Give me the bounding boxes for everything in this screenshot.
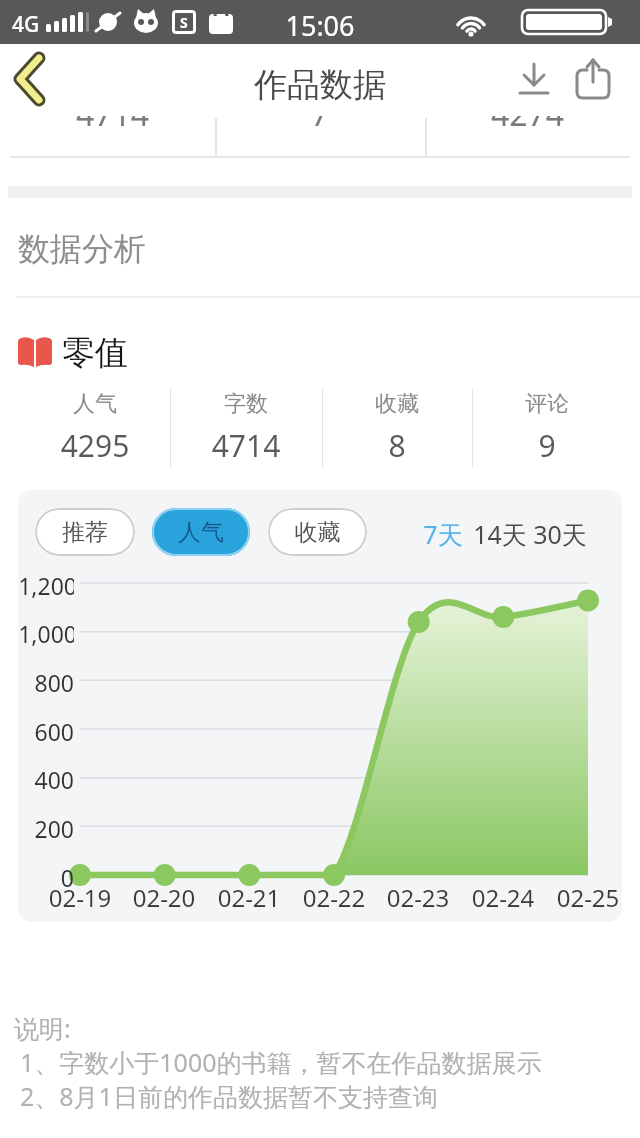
staticText: 30天 <box>525 517 595 551</box>
staticText: 零值 <box>62 332 128 374</box>
staticText: 评论 <box>472 390 622 418</box>
staticText: 推荐 <box>35 518 135 547</box>
staticText: 人气 <box>152 518 250 547</box>
staticText: 4714 <box>170 425 322 466</box>
button[interactable] <box>566 52 620 106</box>
button[interactable]: 14天 <box>465 515 535 551</box>
staticText: 02-21 <box>214 881 284 914</box>
staticText: 1,200 <box>18 570 74 601</box>
staticText: 02-24 <box>468 881 538 914</box>
staticText: 7天 <box>413 517 473 551</box>
button[interactable]: 30天 <box>525 515 595 551</box>
button[interactable] <box>508 54 560 104</box>
staticText: 8 <box>322 425 472 466</box>
staticText: 02-23 <box>383 881 453 914</box>
staticText: 400 <box>18 764 74 795</box>
staticText: 02-25 <box>553 881 622 914</box>
staticText: 2、8月1日前的作品数据暂不支持查询 <box>20 1079 438 1113</box>
staticText: 收藏 <box>322 390 472 418</box>
staticText: 02-22 <box>299 881 369 914</box>
button[interactable]: 人气 <box>152 508 250 556</box>
staticText: 说明: <box>14 1011 71 1045</box>
staticText: 字数 <box>170 390 322 418</box>
staticText: 1、字数小于1000的书籍，暂不在作品数据展示 <box>20 1045 542 1079</box>
staticText: 15:06 <box>285 7 355 44</box>
staticText: 7 <box>215 116 425 133</box>
button[interactable]: 零值 <box>0 326 640 376</box>
staticText: 02-19 <box>45 881 115 914</box>
staticText: 14天 <box>465 517 535 551</box>
staticText: 4G <box>12 10 40 39</box>
staticText: 收藏 <box>268 518 367 547</box>
button[interactable]: 人气 <box>20 385 170 475</box>
button[interactable]: 7天 <box>413 515 473 551</box>
staticText: S <box>180 13 188 32</box>
staticText: 0 <box>18 862 74 893</box>
staticText: 9 <box>472 425 622 466</box>
button[interactable]: 推荐 <box>35 508 135 556</box>
staticText: 作品数据 <box>240 64 400 106</box>
staticText: 02-20 <box>129 881 199 914</box>
staticText: 4295 <box>20 425 170 466</box>
staticText: 800 <box>18 667 74 698</box>
staticText: 数据分析 <box>18 229 146 269</box>
staticText: 200 <box>18 813 74 844</box>
staticText: 1,000 <box>18 618 74 649</box>
button[interactable]: 收藏 <box>268 508 367 556</box>
staticText: 人气 <box>20 390 170 418</box>
button[interactable]: 评论 <box>472 385 622 475</box>
button[interactable] <box>0 44 64 112</box>
button[interactable]: 字数 <box>170 385 322 475</box>
staticText: 4274 <box>425 116 630 133</box>
button[interactable]: 收藏 <box>322 385 472 475</box>
staticText: 4714 <box>10 116 215 133</box>
staticText: 600 <box>18 716 74 747</box>
